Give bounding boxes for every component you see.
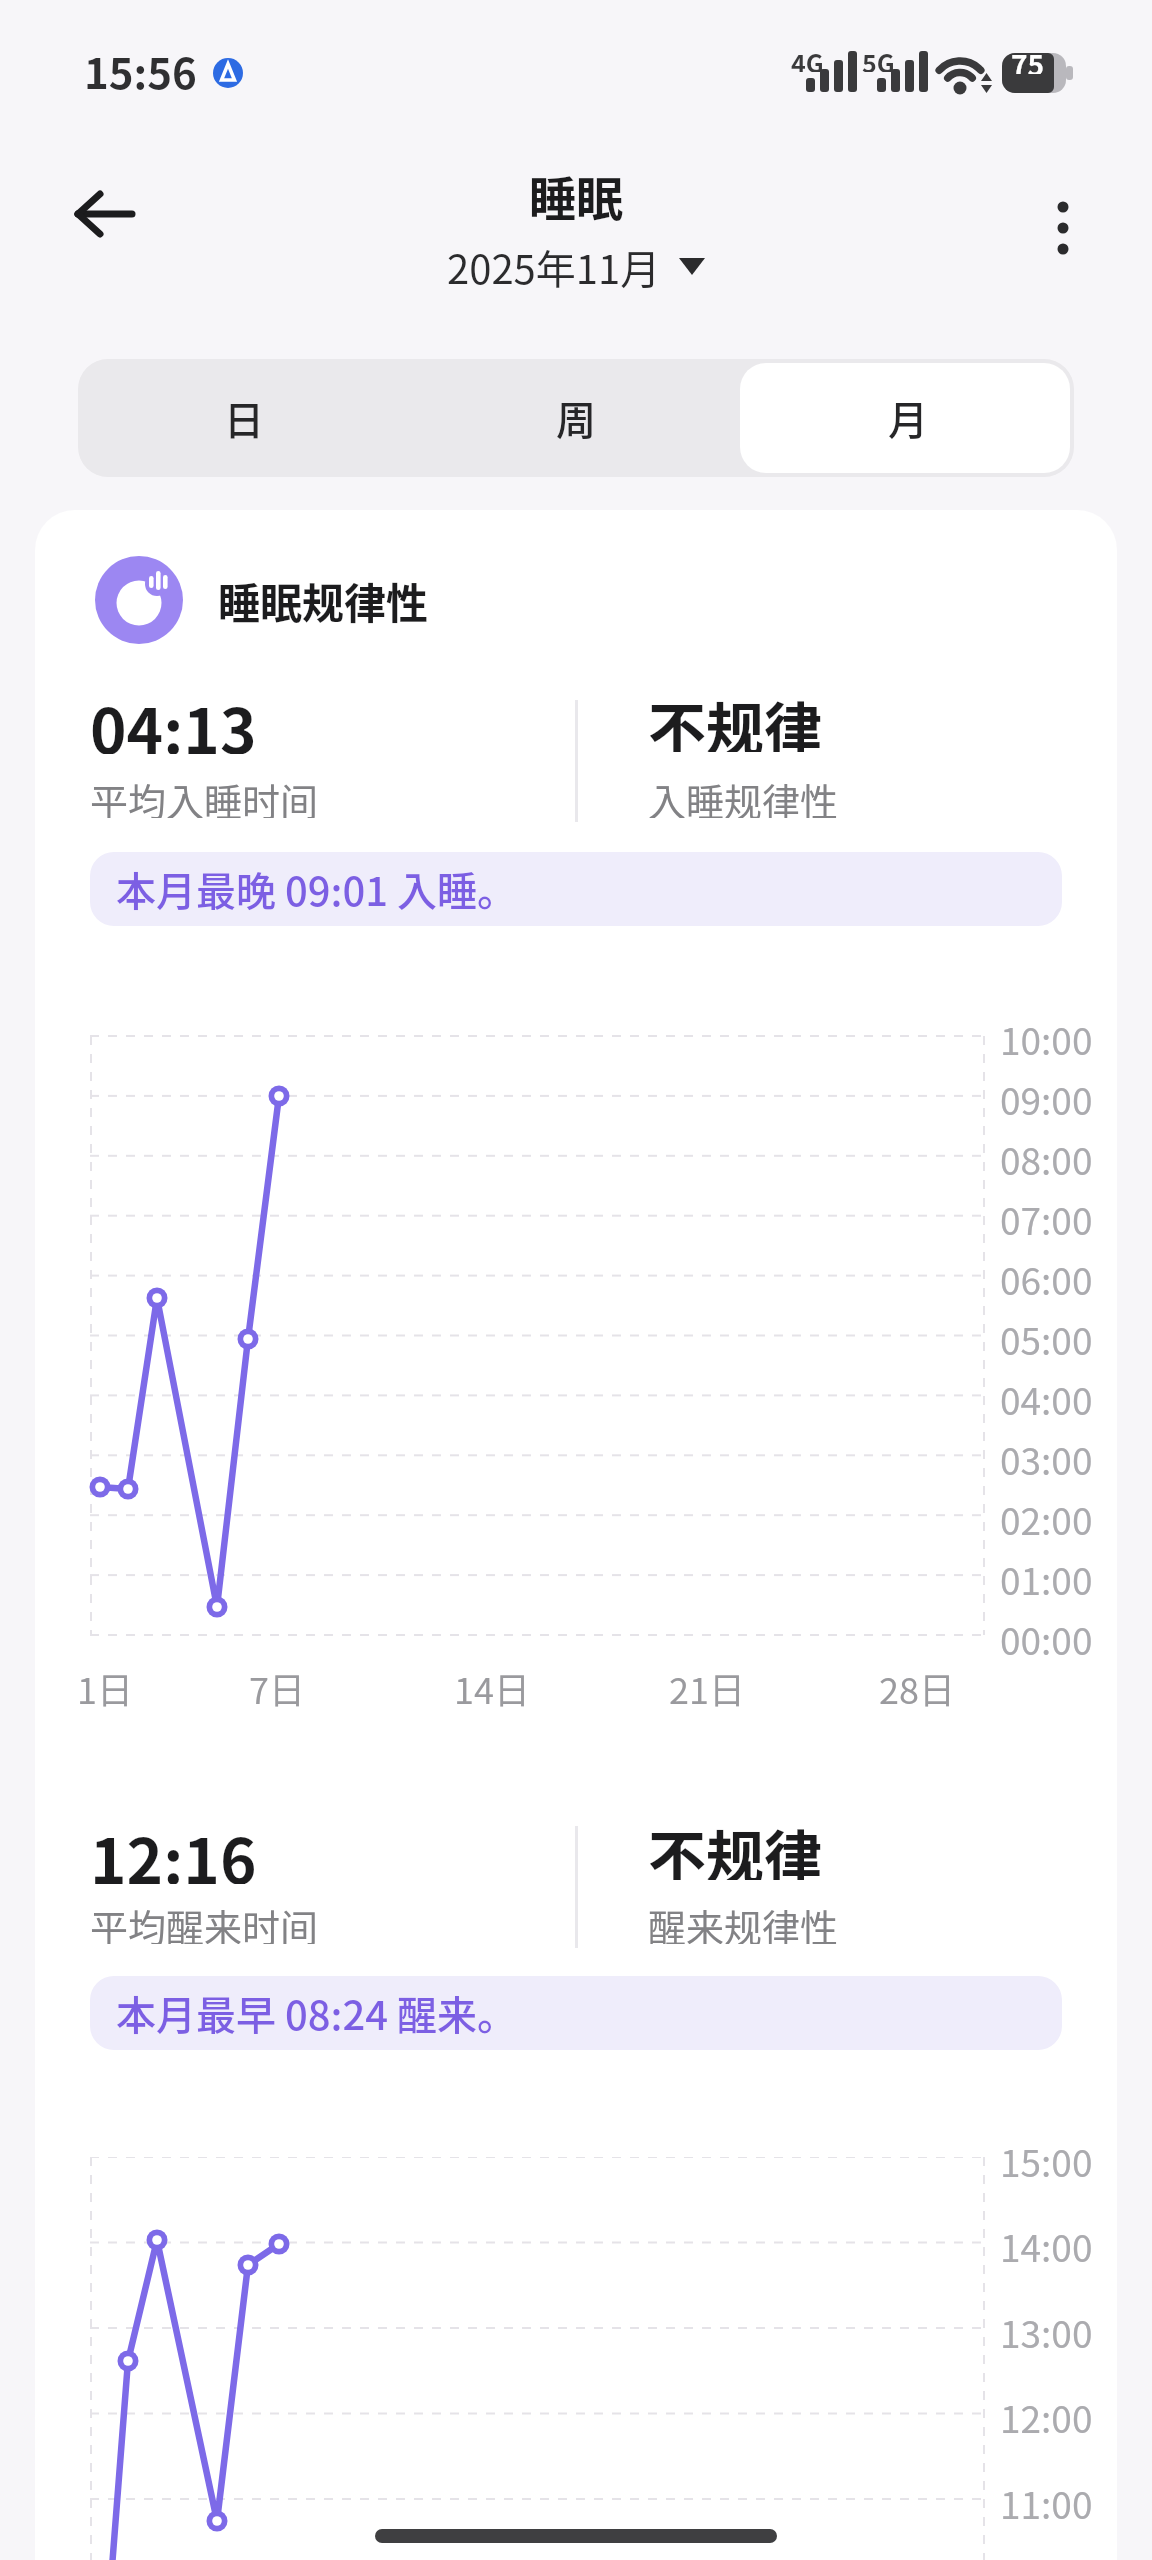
staticText: 05:00 <box>1000 1312 1093 1358</box>
staticText: 04:00 <box>1000 1372 1093 1418</box>
staticText: 2025年11月 <box>447 238 661 294</box>
staticText: 本月最早 08:24 醒来。 <box>116 1984 518 2042</box>
staticText: 平均入睡时间 <box>90 772 319 818</box>
staticText: 08:00 <box>1000 1132 1093 1178</box>
staticText: 13:00 <box>1000 2305 1093 2351</box>
button[interactable]: 月 <box>742 359 1074 477</box>
button[interactable]: 2025年11月 <box>447 238 705 294</box>
staticText: 21日 <box>669 1662 745 1710</box>
staticText: 7日 <box>249 1662 305 1710</box>
staticText: 12:16 <box>90 1812 257 1884</box>
staticText: 10:00 <box>1000 1012 1093 1058</box>
staticText: 15:56 <box>84 40 197 96</box>
staticText: 00:00 <box>1000 1612 1093 1658</box>
staticText: 01:00 <box>1000 1552 1093 1598</box>
button[interactable]: 周 <box>410 359 742 477</box>
staticText: 入睡规律性 <box>648 772 839 818</box>
staticText: 06:00 <box>1000 1252 1093 1298</box>
staticText: 07:00 <box>1000 1192 1093 1238</box>
staticText: 醒来规律性 <box>648 1898 839 1944</box>
staticText: 11:00 <box>1000 2476 1093 2522</box>
staticText: 12:00 <box>1000 2390 1093 2436</box>
staticText: 本月最晚 09:01 入睡。 <box>116 860 518 918</box>
staticText: 03:00 <box>1000 1432 1093 1478</box>
staticText: 04:13 <box>90 682 257 754</box>
staticText: 5G <box>862 44 895 72</box>
staticText: 周 <box>556 389 596 447</box>
button[interactable]: 日 <box>78 359 410 477</box>
button[interactable] <box>1032 192 1094 264</box>
staticText: 28日 <box>879 1662 955 1710</box>
staticText: 15:00 <box>1000 2134 1093 2180</box>
staticText: 平均醒来时间 <box>90 1898 319 1944</box>
staticText: 14:00 <box>1000 2219 1093 2265</box>
button[interactable] <box>60 178 150 250</box>
staticText: 月 <box>888 389 928 447</box>
staticText: 睡眠 <box>529 161 623 221</box>
staticText: 日 <box>224 389 264 447</box>
staticText: 不规律 <box>648 1812 823 1880</box>
staticText: 75 <box>1011 44 1045 74</box>
staticText: 1日 <box>77 1662 133 1710</box>
staticText: 14日 <box>454 1662 530 1710</box>
staticText: 不规律 <box>648 684 823 752</box>
staticText: 02:00 <box>1000 1492 1093 1538</box>
staticText: 09:00 <box>1000 1072 1093 1118</box>
staticText: 睡眠规律性 <box>218 570 429 630</box>
staticText: 4G <box>791 44 824 72</box>
